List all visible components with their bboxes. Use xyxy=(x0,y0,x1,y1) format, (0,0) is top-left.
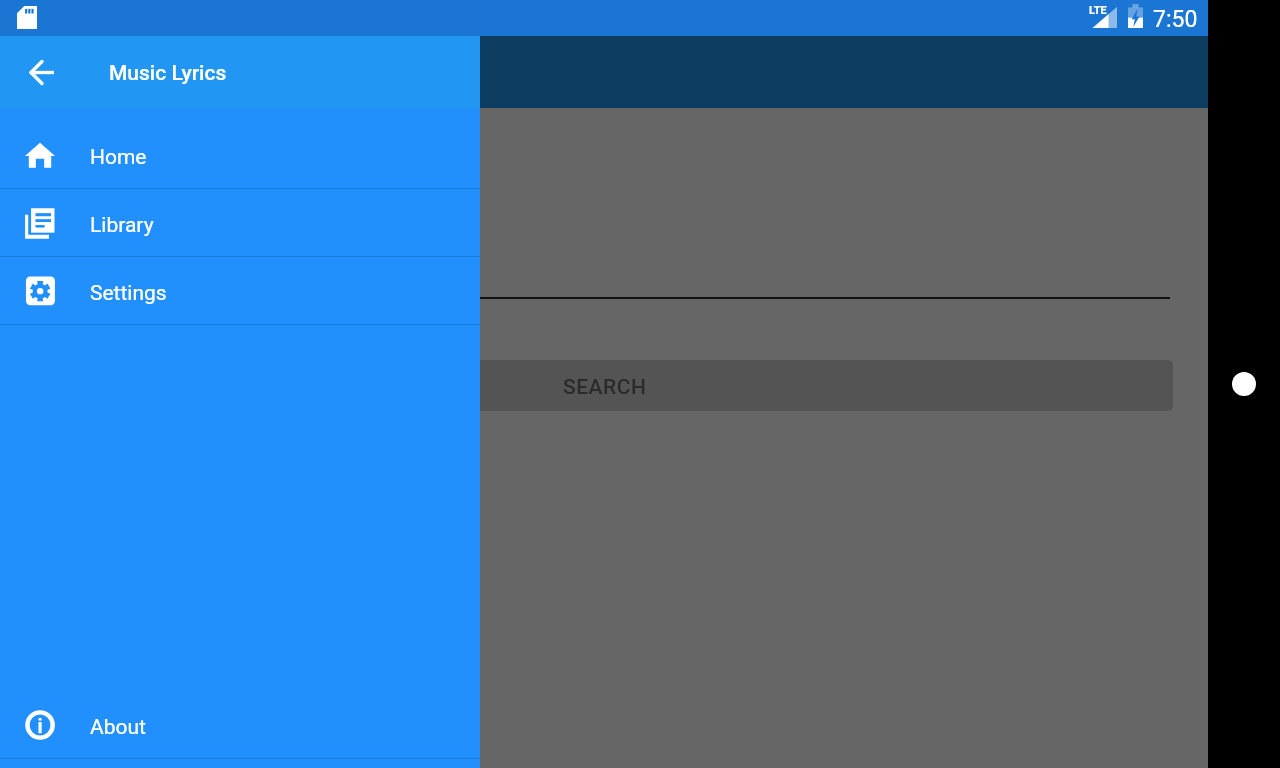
button[interactable]: Home xyxy=(0,121,480,188)
staticText: About xyxy=(90,715,146,740)
button[interactable]: SEARCH xyxy=(36,360,1173,411)
staticText: Home xyxy=(90,145,147,170)
button[interactable]: Home xyxy=(1232,372,1256,396)
staticText: 7:50 xyxy=(1153,6,1198,33)
staticText: Music Lyrics xyxy=(109,61,227,86)
staticText: Library xyxy=(90,213,154,238)
staticText: Settings xyxy=(90,281,167,306)
staticText: LTE xyxy=(1089,4,1107,17)
button[interactable]: Library xyxy=(0,189,480,256)
staticText: SEARCH xyxy=(563,375,647,400)
button[interactable]: Back xyxy=(0,36,82,108)
button[interactable]: Close navigation drawer xyxy=(0,0,1208,768)
button[interactable]: About xyxy=(0,691,480,758)
button[interactable]: Settings xyxy=(0,257,480,324)
